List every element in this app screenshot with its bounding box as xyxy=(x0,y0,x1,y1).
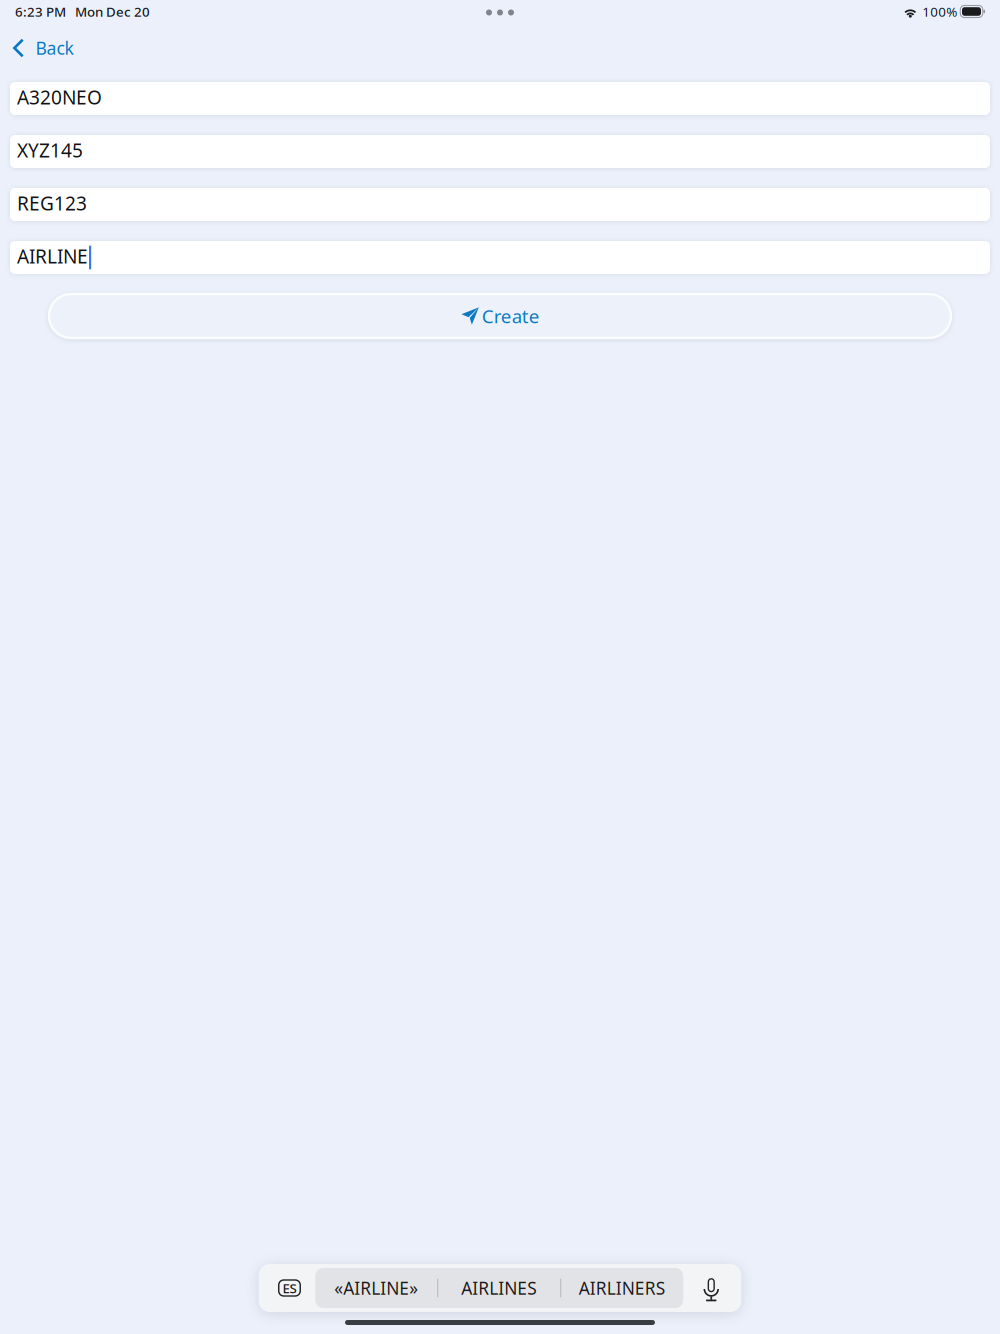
staticText: ES xyxy=(282,1279,296,1297)
staticText: Back xyxy=(35,36,73,60)
button[interactable]: Back xyxy=(0,25,1000,69)
staticText: Mon Dec 20 xyxy=(75,3,150,20)
button[interactable]: AIRLINES xyxy=(438,1268,560,1308)
button[interactable]: Dictation xyxy=(683,1276,741,1300)
button[interactable]: XYZ145 xyxy=(0,135,1000,168)
staticText: AIRLINES xyxy=(461,1276,537,1299)
staticText: A320NEO xyxy=(17,84,102,110)
button[interactable]: «AIRLINE» xyxy=(315,1268,437,1308)
button[interactable]: A320NEO xyxy=(0,82,1000,115)
staticText: REG123 xyxy=(17,190,87,216)
button[interactable]: Create xyxy=(0,294,1000,338)
button[interactable]: REG123 xyxy=(0,188,1000,221)
staticText: XYZ145 xyxy=(17,137,83,163)
staticText: Create xyxy=(482,303,540,329)
staticText: 100% xyxy=(922,3,957,20)
button[interactable]: Keyboard language xyxy=(259,1280,315,1296)
staticText: AIRLINE xyxy=(17,243,88,269)
staticText: 6:23 PM xyxy=(15,3,66,20)
button[interactable]: AIRLINERS xyxy=(561,1268,683,1308)
staticText: «AIRLINE» xyxy=(334,1276,418,1299)
staticText: AIRLINERS xyxy=(579,1276,666,1299)
button[interactable]: AIRLINE xyxy=(0,241,1000,274)
